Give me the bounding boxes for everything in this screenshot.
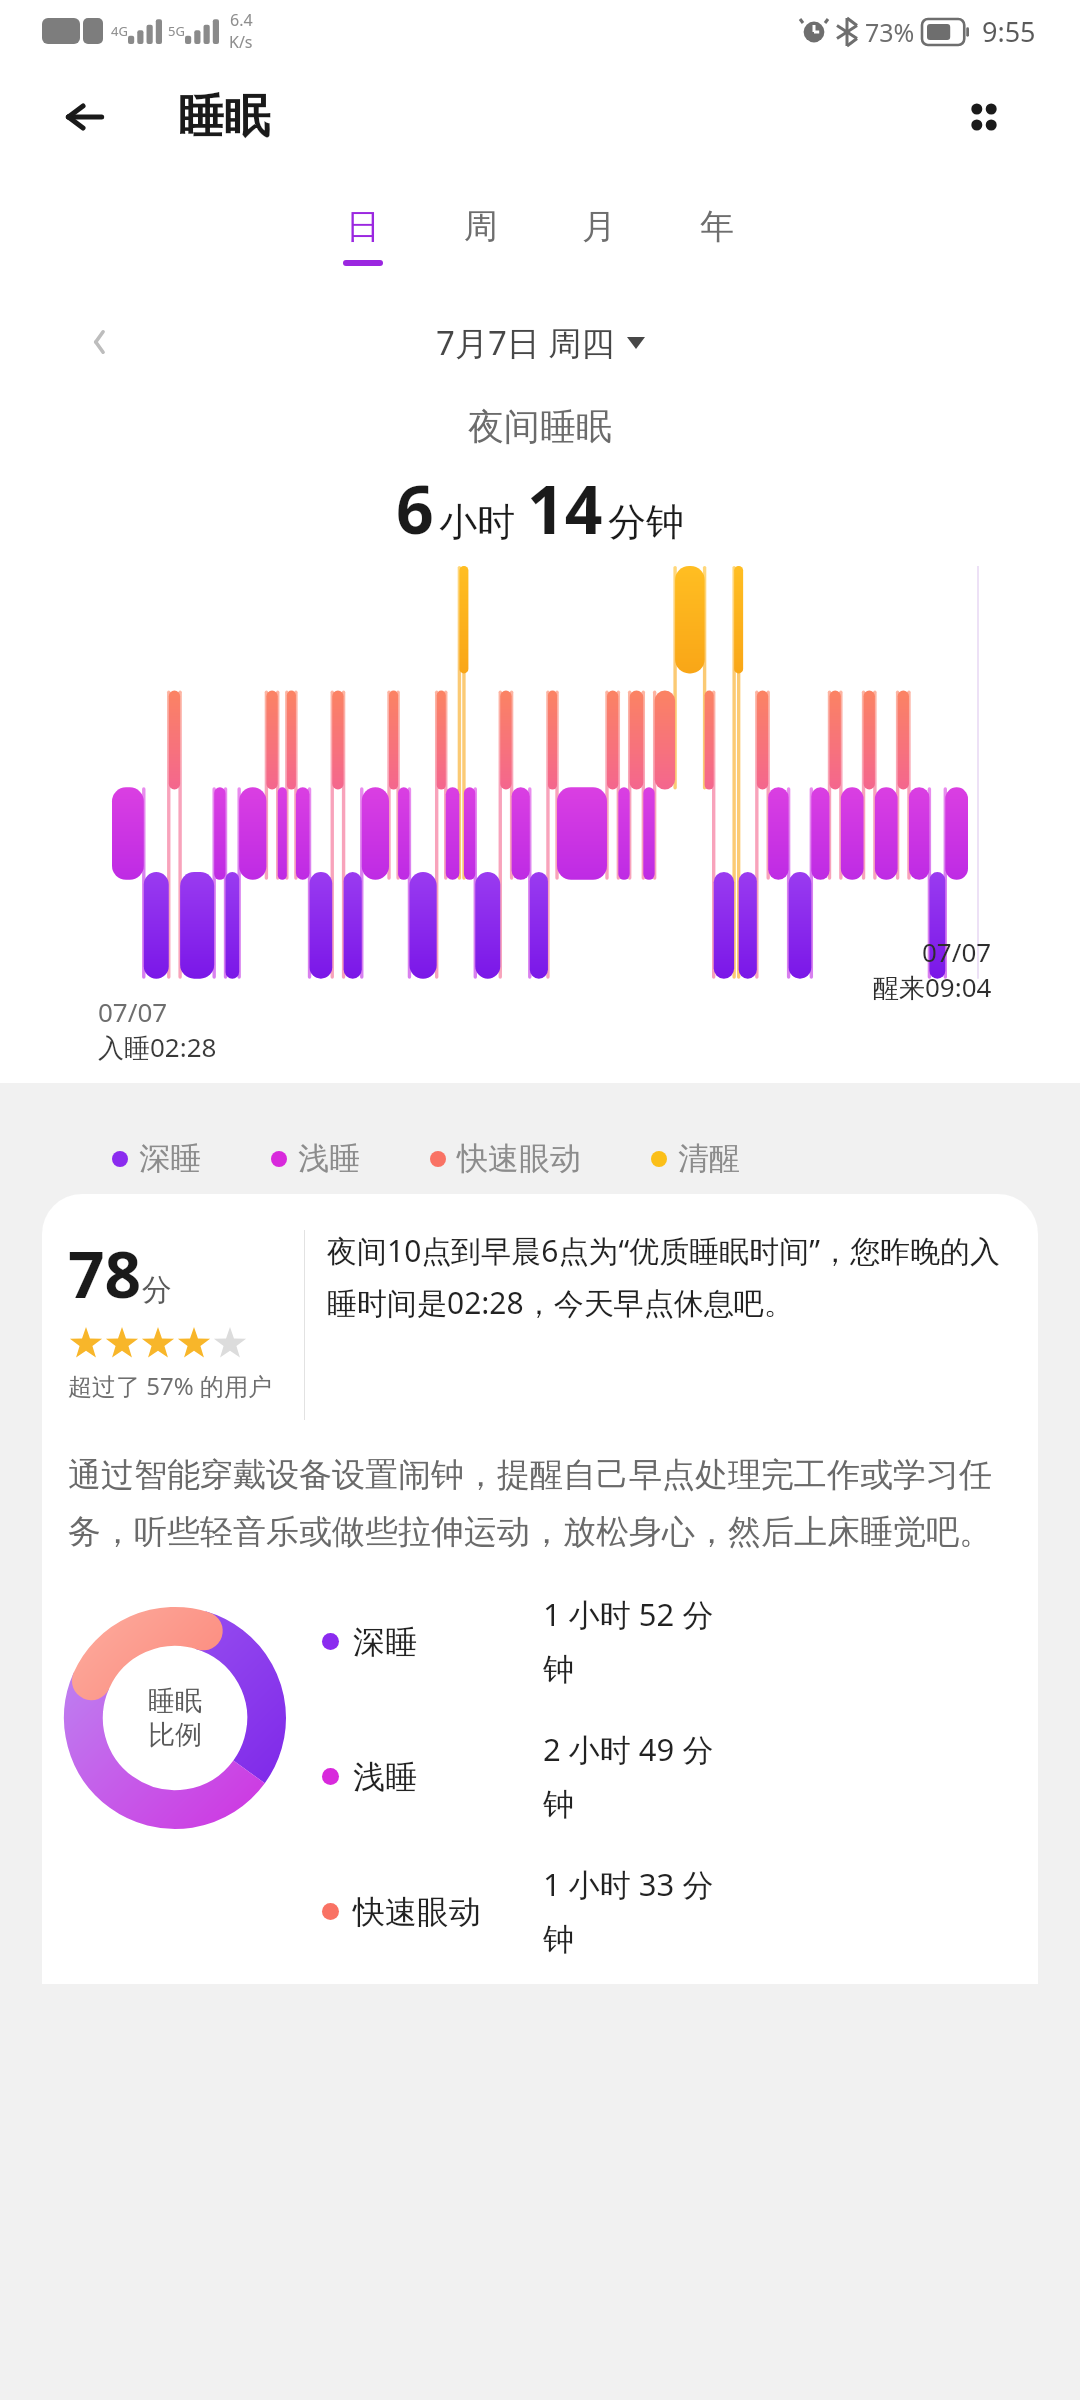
staticText: 快速眼动 (457, 1139, 581, 1178)
staticText: 07/07 (922, 934, 992, 969)
button[interactable]: 清醒 (651, 1139, 740, 1178)
staticText: 醒来09:04 (873, 969, 992, 1005)
staticText: 7月7日 周四 (436, 320, 615, 365)
button[interactable]: 浅睡 (322, 1728, 1038, 1825)
staticText: 浅睡 (298, 1139, 360, 1178)
staticText: 夜间10点到早晨6点为“优质睡眠时间”，您昨晚的入睡时间是02:28，今天早点休… (327, 1230, 1012, 1323)
staticText: 78 (68, 1230, 142, 1317)
staticText: 浅睡 (353, 1757, 543, 1797)
button[interactable]: 日 (335, 205, 391, 266)
button[interactable]: 快速眼动 (322, 1863, 1038, 1960)
button[interactable]: 深睡 (322, 1593, 1038, 1690)
staticText: 年 (700, 205, 734, 248)
button[interactable]: 深睡 (112, 1139, 201, 1178)
staticText: 通过智能穿戴设备设置闹钟，提醒自己早点处理完工作或学习任务，听些轻音乐或做些拉伸… (68, 1454, 1012, 1553)
staticText: 分钟 (608, 498, 684, 546)
staticText: 快速眼动 (353, 1892, 543, 1932)
staticText: 6 (396, 463, 434, 553)
button[interactable]: Back (52, 85, 116, 149)
staticText: 睡眠 (148, 1684, 202, 1718)
staticText: 4G (111, 22, 128, 40)
staticText: 周 (464, 205, 498, 248)
staticText: 比例 (148, 1718, 202, 1752)
button[interactable]: 7月7日 周四 (436, 320, 645, 365)
staticText: 超过了 57% 的用户 (68, 1369, 272, 1402)
staticText: 分 (142, 1271, 172, 1309)
staticText: 5G (168, 22, 185, 40)
staticText: 6.4 (230, 9, 253, 31)
staticText: 睡眠 (178, 88, 270, 146)
staticText: 清醒 (678, 1139, 740, 1178)
button[interactable]: 浅睡 (271, 1139, 360, 1178)
staticText: 07/07 (98, 994, 168, 1029)
staticText: 14 (527, 463, 603, 553)
staticText: 日 (346, 205, 380, 248)
staticText: 入睡02:28 (98, 1029, 217, 1065)
staticText: K/s (229, 31, 253, 53)
button[interactable]: Previous day (76, 319, 122, 365)
button[interactable]: More options (948, 81, 1020, 153)
staticText: 1 小时 52 分钟 (543, 1593, 743, 1690)
staticText: 1 小时 33 分钟 (543, 1863, 743, 1960)
staticText: 夜间睡眠 (468, 404, 612, 449)
staticText: 月 (582, 205, 616, 248)
button[interactable]: 快速眼动 (430, 1139, 581, 1178)
button[interactable]: 周 (453, 205, 509, 266)
button[interactable]: 月 (571, 205, 627, 266)
staticText: 2 小时 49 分钟 (543, 1728, 743, 1825)
staticText: 9:55 (982, 13, 1036, 50)
staticText: 73% (865, 15, 915, 49)
button[interactable]: 年 (689, 205, 745, 266)
staticText: 小时 (439, 498, 515, 546)
staticText: 深睡 (353, 1622, 543, 1662)
staticText: 深睡 (139, 1139, 201, 1178)
